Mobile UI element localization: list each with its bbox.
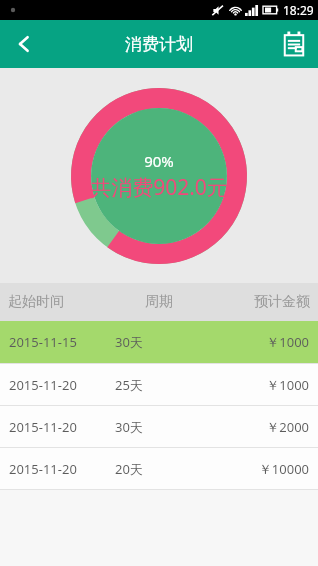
staticText: 周期: [106, 293, 212, 311]
staticText: 共消费902.0元: [90, 173, 228, 202]
staticText: 20天: [115, 460, 202, 478]
staticText: 预计金额: [212, 293, 310, 311]
staticText: 18:29: [283, 2, 314, 18]
staticText: ￥2000: [202, 418, 309, 436]
button[interactable]: Plan list: [270, 20, 318, 68]
staticText: 消费计划: [125, 34, 193, 55]
button[interactable]: 2015-11-20: [0, 448, 318, 489]
staticText: 25天: [115, 376, 202, 394]
staticText: 2015-11-20: [9, 418, 115, 436]
staticText: 2015-11-20: [9, 460, 115, 478]
staticText: 2015-11-20: [9, 376, 115, 394]
button[interactable]: Back: [0, 20, 48, 68]
staticText: 90%: [144, 151, 174, 171]
staticText: 30天: [115, 333, 202, 351]
staticText: 起始时间: [8, 293, 106, 311]
staticText: ￥1000: [202, 376, 309, 394]
staticText: ￥10000: [202, 460, 309, 478]
button[interactable]: 2015-11-15: [0, 321, 318, 363]
staticText: 2015-11-15: [9, 333, 115, 351]
staticText: ￥1000: [202, 333, 309, 351]
button[interactable]: 2015-11-20: [0, 406, 318, 447]
button[interactable]: 2015-11-20: [0, 364, 318, 405]
staticText: 30天: [115, 418, 202, 436]
